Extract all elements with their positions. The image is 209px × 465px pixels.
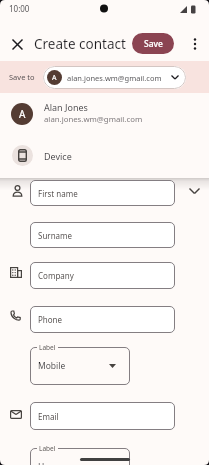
staticText: Phone bbox=[38, 314, 63, 325]
button[interactable]: A bbox=[0, 97, 209, 131]
button[interactable] bbox=[185, 33, 205, 55]
button[interactable]: Device bbox=[0, 140, 209, 172]
button[interactable]: A bbox=[43, 66, 186, 89]
staticText: First name bbox=[38, 188, 78, 199]
button[interactable]: Company bbox=[30, 262, 175, 289]
staticText: Home bbox=[38, 461, 63, 465]
staticText: alan.jones.wm@gmail.com bbox=[67, 73, 162, 83]
staticText: Save bbox=[144, 38, 163, 50]
staticText: Label bbox=[39, 444, 56, 453]
button[interactable]: Save bbox=[132, 33, 174, 54]
staticText: A bbox=[52, 73, 57, 83]
staticText: Save to bbox=[9, 72, 35, 82]
staticText: alan.jones.wm@gmail.com bbox=[44, 114, 143, 125]
button[interactable]: Home bbox=[30, 448, 130, 465]
staticText: Email bbox=[38, 411, 59, 422]
staticText: 10:00 bbox=[9, 3, 30, 14]
button[interactable]: Phone bbox=[30, 306, 175, 333]
button[interactable]: Surname bbox=[30, 222, 175, 248]
staticText: Company bbox=[38, 270, 74, 281]
button[interactable]: Mobile bbox=[30, 347, 130, 385]
button[interactable] bbox=[6, 33, 28, 55]
staticText: Mobile bbox=[38, 360, 66, 372]
staticText: Create contact bbox=[34, 35, 126, 53]
staticText: Surname bbox=[38, 230, 73, 241]
staticText: Alan Jones bbox=[44, 101, 88, 113]
staticText: Device bbox=[44, 150, 72, 162]
button[interactable] bbox=[183, 180, 205, 202]
staticText: A bbox=[19, 107, 26, 121]
button[interactable]: Email bbox=[30, 402, 175, 430]
button[interactable]: First name bbox=[30, 180, 175, 206]
staticText: Label bbox=[39, 343, 56, 352]
